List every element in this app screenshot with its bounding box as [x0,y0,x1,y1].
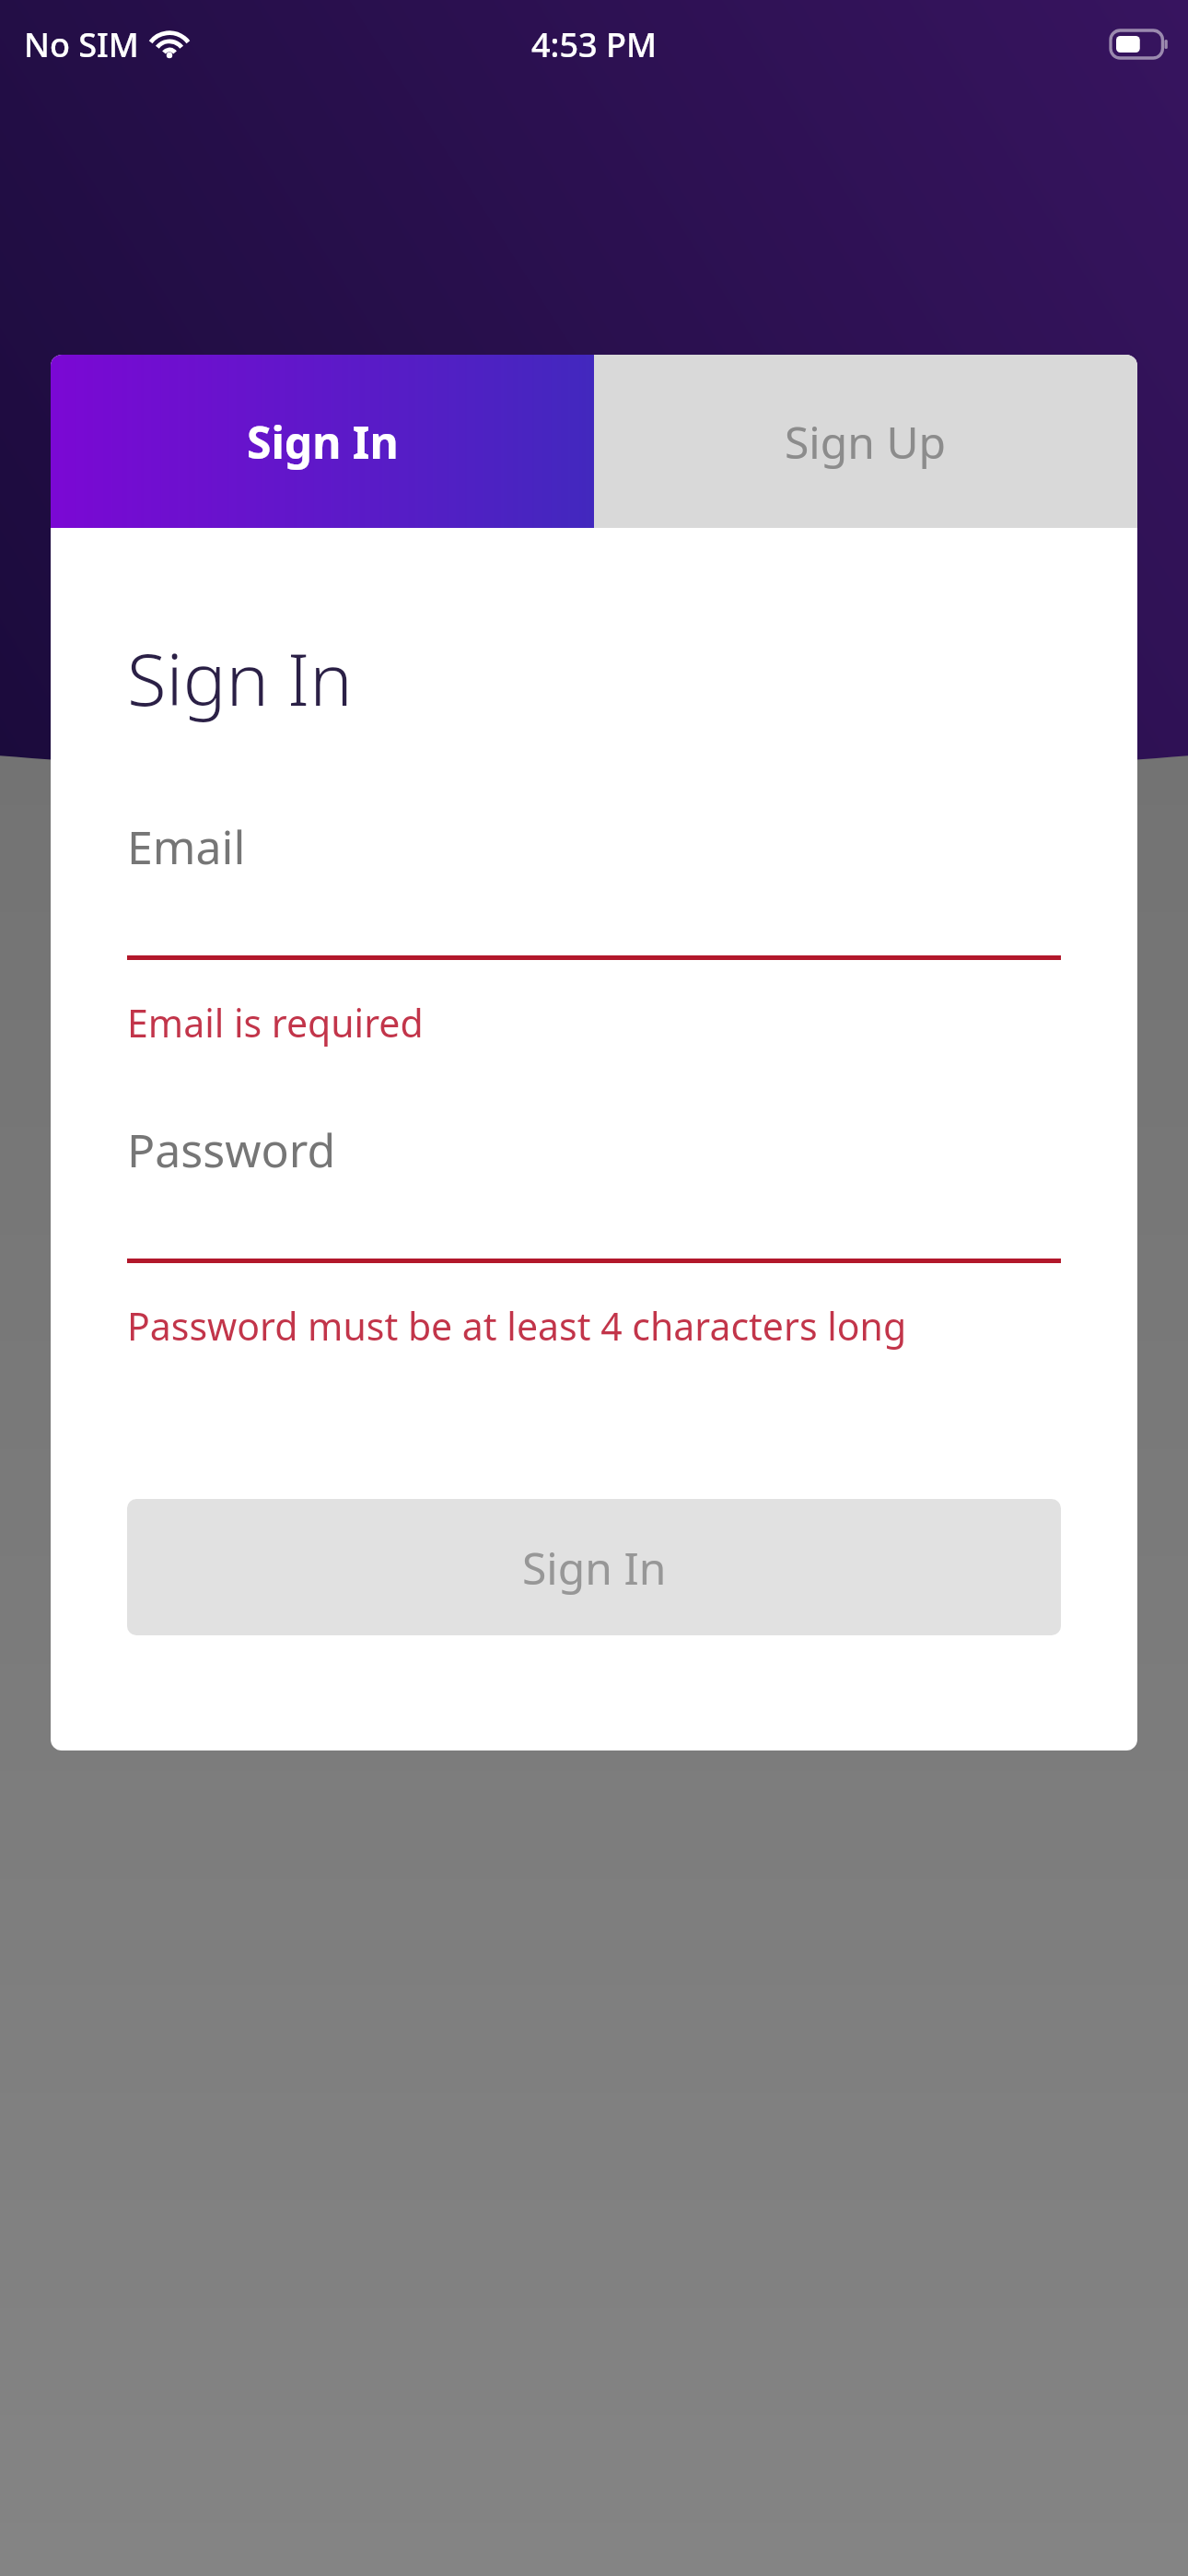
staticText: Password must be at least 4 characters l… [127,1300,907,1352]
button[interactable]: Password [127,1118,1061,1263]
other: Battery [1111,30,1168,58]
staticText: Email [127,815,246,878]
staticText: 4:53 PM [531,22,657,67]
button[interactable]: Sign In [127,1499,1061,1635]
button[interactable]: Sign In [51,355,594,528]
staticText: Sign In [127,629,353,727]
staticText: Email is required [127,997,424,1048]
staticText: Sign In [247,412,399,472]
staticText: Sign Up [785,412,947,472]
button[interactable]: Email [127,815,1061,960]
other: Wi-Fi [152,32,187,58]
staticText: No SIM [24,22,139,67]
staticText: Password [127,1118,336,1181]
staticText: Sign In [522,1538,667,1598]
button[interactable]: Sign Up [594,355,1137,528]
